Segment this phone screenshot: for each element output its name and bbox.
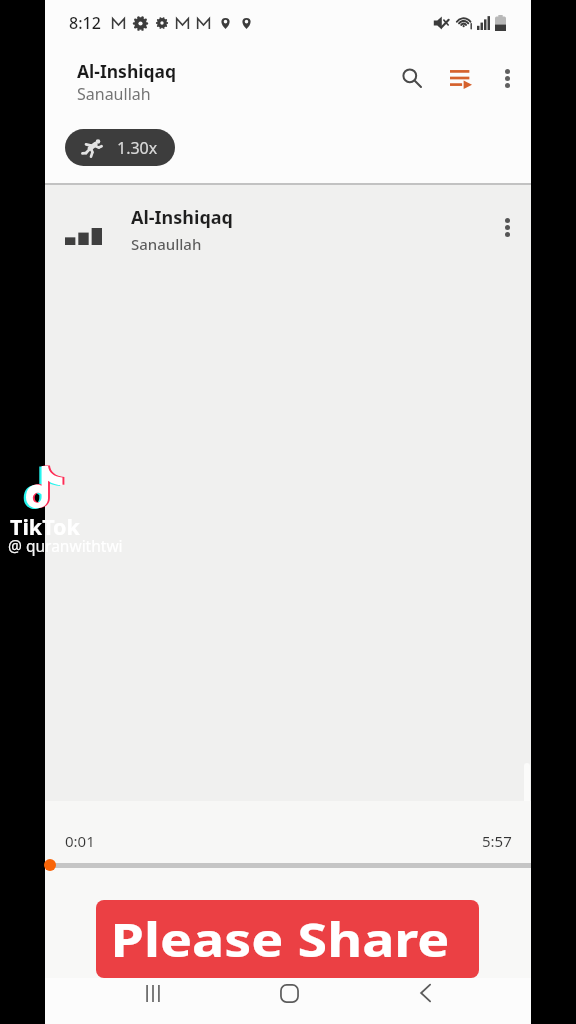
staticText: TikTok <box>10 512 80 541</box>
staticText: Al-Inshiqaq <box>77 59 177 83</box>
staticText: 8:12 <box>69 12 101 34</box>
button[interactable]: More options <box>485 56 529 100</box>
staticText: 0:01 <box>65 831 95 851</box>
staticText: 1.30x <box>117 137 158 159</box>
staticText: Please Share <box>110 908 450 971</box>
button[interactable] <box>45 856 531 876</box>
button[interactable]: 1.30x <box>65 129 175 166</box>
button[interactable]: Back <box>399 970 451 1016</box>
staticText: @ quranwithtwi <box>8 535 123 556</box>
staticText: Sanaullah <box>131 234 202 254</box>
button[interactable]: Recent apps <box>127 970 179 1016</box>
button[interactable]: Please Share <box>96 900 479 978</box>
button[interactable]: Search <box>390 56 434 100</box>
staticText: 5:57 <box>482 831 512 851</box>
button[interactable]: Al-Inshiqaq <box>45 184 531 262</box>
button[interactable]: Play queue <box>439 57 483 101</box>
button[interactable]: Home <box>263 970 315 1016</box>
button[interactable]: Track options <box>487 207 527 247</box>
staticText: Al-Inshiqaq <box>131 205 233 230</box>
staticText: Sanaullah <box>77 83 151 105</box>
